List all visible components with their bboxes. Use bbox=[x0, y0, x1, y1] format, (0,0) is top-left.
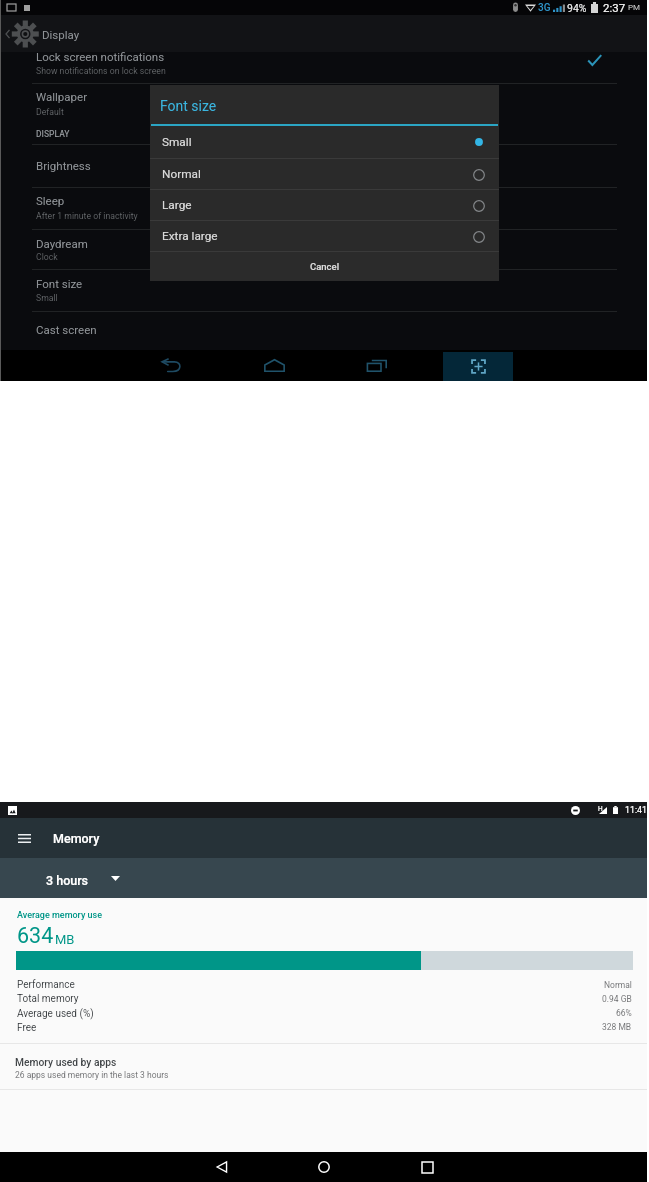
button[interactable]: Home bbox=[248, 350, 300, 381]
button[interactable]: Back bbox=[198, 1152, 246, 1182]
button[interactable]: Large bbox=[150, 190, 499, 221]
button[interactable]: Extra large bbox=[150, 221, 499, 252]
staticText: Extra large bbox=[162, 229, 218, 243]
staticText: 328 MB bbox=[602, 1022, 632, 1032]
staticText: 3 hours bbox=[46, 873, 89, 888]
staticText: 94% bbox=[567, 2, 587, 14]
staticText: 66% bbox=[616, 1008, 632, 1018]
button[interactable]: Cancel bbox=[150, 252, 499, 281]
staticText: Font size bbox=[36, 277, 83, 290]
staticText: Average memory use bbox=[17, 910, 102, 921]
staticText: 2:37 bbox=[603, 1, 626, 14]
staticText: 634 bbox=[17, 923, 54, 948]
staticText: 11:41 bbox=[625, 805, 647, 815]
button[interactable] bbox=[0, 229, 647, 269]
button[interactable] bbox=[0, 46, 647, 83]
staticText: Default bbox=[36, 107, 64, 117]
staticText: Display bbox=[42, 28, 80, 41]
staticText: Performance bbox=[17, 979, 75, 991]
staticText: Lock screen notifications bbox=[36, 50, 165, 63]
staticText: 26 apps used memory in the last 3 hours bbox=[15, 1070, 169, 1080]
staticText: Cast screen bbox=[36, 323, 97, 336]
staticText: Brightness bbox=[36, 159, 91, 172]
button[interactable]: Normal bbox=[150, 159, 499, 190]
staticText: DISPLAY bbox=[36, 129, 70, 139]
staticText: Wallpaper bbox=[36, 90, 88, 103]
button[interactable]: Back bbox=[145, 350, 197, 381]
staticText: Memory used by apps bbox=[15, 1056, 117, 1068]
button[interactable] bbox=[0, 270, 647, 310]
button[interactable] bbox=[40, 866, 122, 890]
button[interactable]: Memory used by apps bbox=[0, 1044, 647, 1089]
staticText: PM bbox=[628, 3, 641, 12]
staticText: 3G bbox=[538, 2, 551, 14]
staticText: Memory bbox=[53, 831, 100, 846]
button[interactable]: Recent apps bbox=[403, 1152, 451, 1182]
staticText: Free bbox=[17, 1022, 37, 1034]
staticText: Small bbox=[162, 135, 192, 149]
staticText: Total memory bbox=[17, 993, 79, 1005]
staticText: H bbox=[598, 805, 603, 813]
staticText: Daydream bbox=[36, 237, 88, 250]
staticText: Normal bbox=[604, 980, 632, 990]
button[interactable]: Small bbox=[150, 126, 499, 158]
staticText: Small bbox=[36, 293, 58, 303]
button[interactable]: Open navigation drawer bbox=[12, 826, 36, 850]
staticText: Cancel bbox=[310, 261, 340, 272]
staticText: Average used (%) bbox=[17, 1008, 94, 1020]
button[interactable] bbox=[0, 311, 647, 349]
button[interactable]: Home bbox=[300, 1152, 348, 1182]
button[interactable] bbox=[0, 188, 647, 228]
staticText: After 1 minute of inactivity bbox=[36, 211, 138, 221]
button[interactable]: Take screenshot bbox=[443, 352, 513, 381]
button[interactable]: Recent apps bbox=[351, 350, 403, 381]
button[interactable] bbox=[0, 84, 647, 121]
staticText: Show notifications on lock screen bbox=[36, 66, 166, 76]
staticText: Sleep bbox=[36, 194, 65, 207]
staticText: Clock bbox=[36, 252, 58, 262]
staticText: Normal bbox=[162, 167, 201, 181]
staticText: MB bbox=[55, 932, 75, 947]
button[interactable]: Navigate up bbox=[0, 15, 40, 52]
button[interactable] bbox=[0, 146, 647, 187]
staticText: Large bbox=[162, 198, 192, 212]
staticText: Font size bbox=[160, 98, 217, 114]
staticText: 0.94 GB bbox=[602, 994, 632, 1004]
